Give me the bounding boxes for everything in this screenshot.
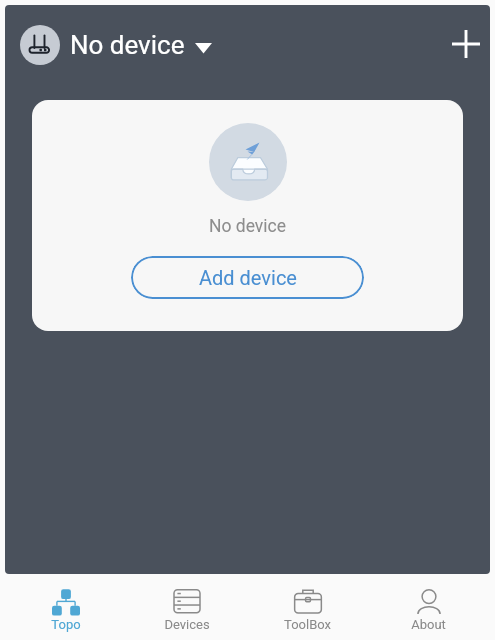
button[interactable]: Add device xyxy=(131,256,364,299)
staticText: No device xyxy=(209,216,287,237)
staticText: No device xyxy=(70,30,185,60)
button[interactable]: No device xyxy=(20,25,212,65)
staticText: Devices xyxy=(164,617,210,632)
button[interactable]: Add device xyxy=(443,21,488,66)
button[interactable]: About xyxy=(368,582,489,632)
button[interactable]: Devices xyxy=(126,582,247,632)
staticText: About xyxy=(411,617,446,632)
staticText: ToolBox xyxy=(284,617,331,632)
staticText: Topo xyxy=(51,617,81,632)
button[interactable]: Topo xyxy=(6,582,126,632)
staticText: Add device xyxy=(199,266,297,289)
button[interactable]: ToolBox xyxy=(247,582,368,632)
